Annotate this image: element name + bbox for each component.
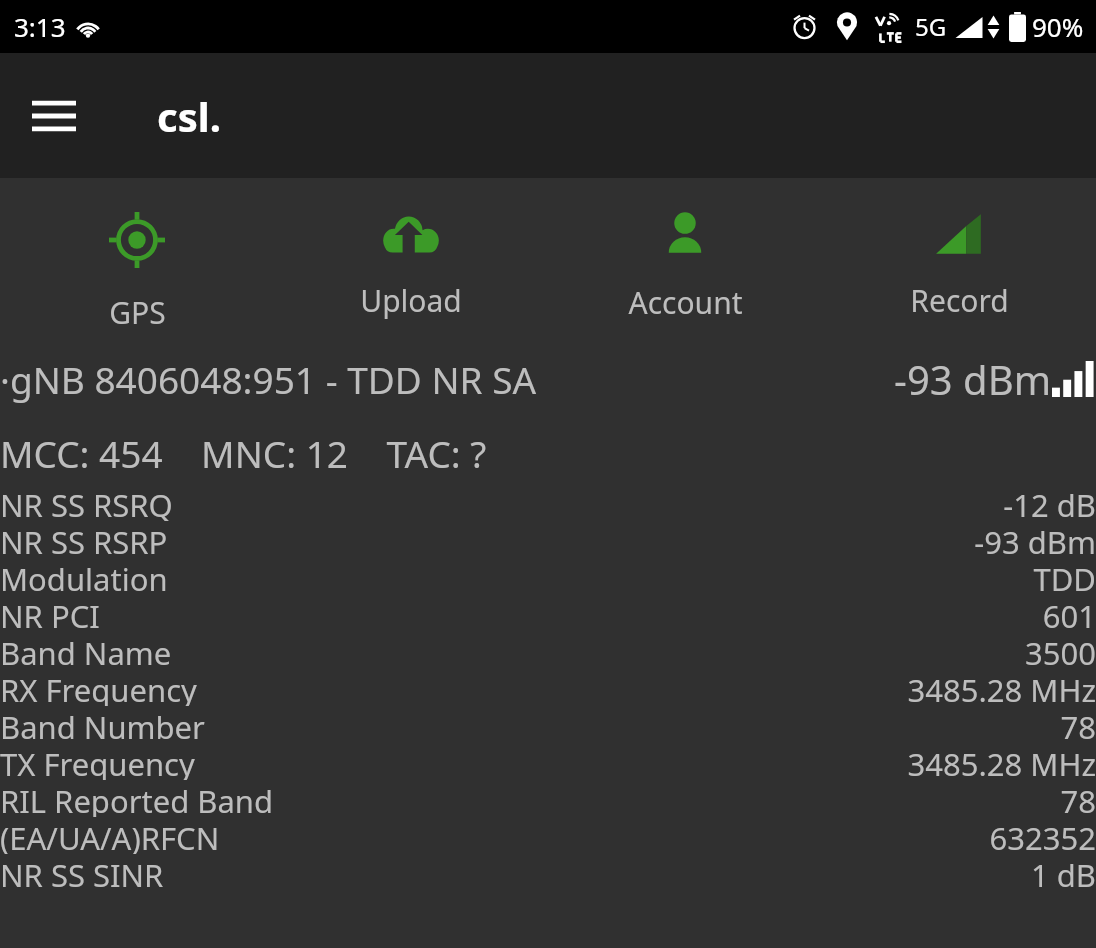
button[interactable]: RIL Reported Band — [0, 780, 1096, 817]
staticText: 3485.28 MHz — [907, 743, 1096, 780]
staticText: Band Number — [0, 706, 205, 743]
staticText: NR SS RSRP — [0, 521, 168, 558]
staticText: 3485.28 MHz — [907, 669, 1096, 706]
staticText: 3500 — [1025, 632, 1096, 669]
staticText: TDD — [1033, 558, 1096, 595]
staticText: 5G — [915, 10, 947, 43]
staticText: RIL Reported Band — [0, 780, 274, 817]
staticText: NR PCI — [0, 595, 100, 632]
staticText: Band Name — [0, 632, 172, 669]
staticText: GPS — [109, 292, 166, 333]
button[interactable]: NR SS RSRP — [0, 521, 1096, 558]
staticText: 3:13 — [14, 9, 66, 44]
staticText: 1 dB — [1030, 854, 1096, 891]
staticText: -93 dBm — [974, 521, 1096, 558]
button[interactable]: NR PCI — [0, 595, 1096, 632]
staticText: NR SS RSRQ — [0, 484, 173, 521]
staticText: Record — [910, 280, 1009, 321]
staticText: csl. — [157, 89, 221, 143]
staticText: (EA/UA/A)RFCN — [0, 817, 220, 854]
button[interactable]: NR SS SINR — [0, 854, 1096, 891]
staticText: 78 — [1060, 706, 1096, 743]
button[interactable]: Account — [548, 178, 822, 338]
button[interactable]: (EA/UA/A)RFCN — [0, 817, 1096, 854]
staticText: 632352 — [989, 817, 1096, 854]
button[interactable]: Record — [822, 178, 1096, 338]
staticText: Account — [628, 282, 743, 323]
button[interactable]: Modulation — [0, 558, 1096, 595]
staticText: 601 — [1042, 595, 1096, 632]
button[interactable]: NR SS RSRQ — [0, 484, 1096, 521]
staticText: -93 dBm — [894, 352, 1052, 406]
button[interactable]: Band Name — [0, 632, 1096, 669]
button[interactable]: GPS — [0, 178, 274, 338]
staticText: -12 dB — [1003, 484, 1096, 521]
staticText: Upload — [360, 280, 462, 321]
button[interactable]: Open navigation menu — [26, 88, 82, 144]
staticText: ·gNB 8406048:951 - TDD NR SA — [0, 354, 537, 404]
staticText: Modulation — [0, 558, 168, 595]
staticText: RX Frequency — [0, 669, 197, 706]
button[interactable]: Upload — [274, 178, 548, 338]
staticText: MCC: 454 MNC: 12 TAC: ? — [0, 428, 487, 478]
staticText: 90% — [1032, 9, 1084, 44]
staticText: 78 — [1060, 780, 1096, 817]
button[interactable]: TX Frequency — [0, 743, 1096, 780]
staticText: NR SS SINR — [0, 854, 164, 891]
button[interactable]: RX Frequency — [0, 669, 1096, 706]
button[interactable]: Band Number — [0, 706, 1096, 743]
staticText: TX Frequency — [0, 743, 195, 780]
